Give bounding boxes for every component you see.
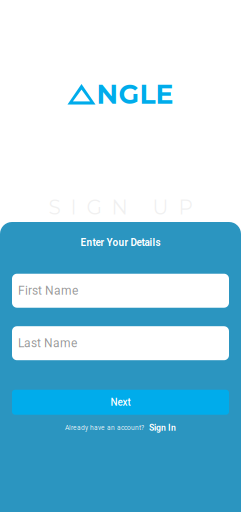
- button[interactable]: Last Name: [12, 326, 229, 360]
- button[interactable]: Already have an account?: [65, 415, 176, 433]
- button[interactable]: Next: [0, 360, 241, 415]
- staticText: SIGN UP: [48, 195, 192, 219]
- staticText: NGLE: [96, 78, 173, 110]
- staticText: Last Name: [18, 336, 77, 350]
- staticText: Sign In: [149, 423, 176, 433]
- staticText: First Name: [18, 284, 78, 298]
- staticText: Already have an account?: [65, 424, 144, 432]
- staticText: Next: [110, 396, 130, 408]
- button[interactable]: First Name: [12, 274, 229, 308]
- staticText: Enter Your Details: [80, 237, 160, 248]
